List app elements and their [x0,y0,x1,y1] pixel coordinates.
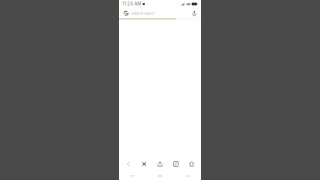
staticText: 11:24 AM [122,1,141,7]
button[interactable]: Home [146,173,174,179]
button[interactable]: Back [120,157,136,171]
button[interactable]: Input to Search [119,8,201,18]
button[interactable]: Recents [119,173,146,179]
button[interactable]: Share [152,157,168,171]
button[interactable]: Tabs [168,157,184,171]
button[interactable]: Stop loading [136,157,152,171]
button[interactable]: Back [174,173,201,179]
staticText: 2 [174,161,177,167]
button[interactable]: Home [184,157,199,171]
staticText: Input to Search [131,11,155,15]
